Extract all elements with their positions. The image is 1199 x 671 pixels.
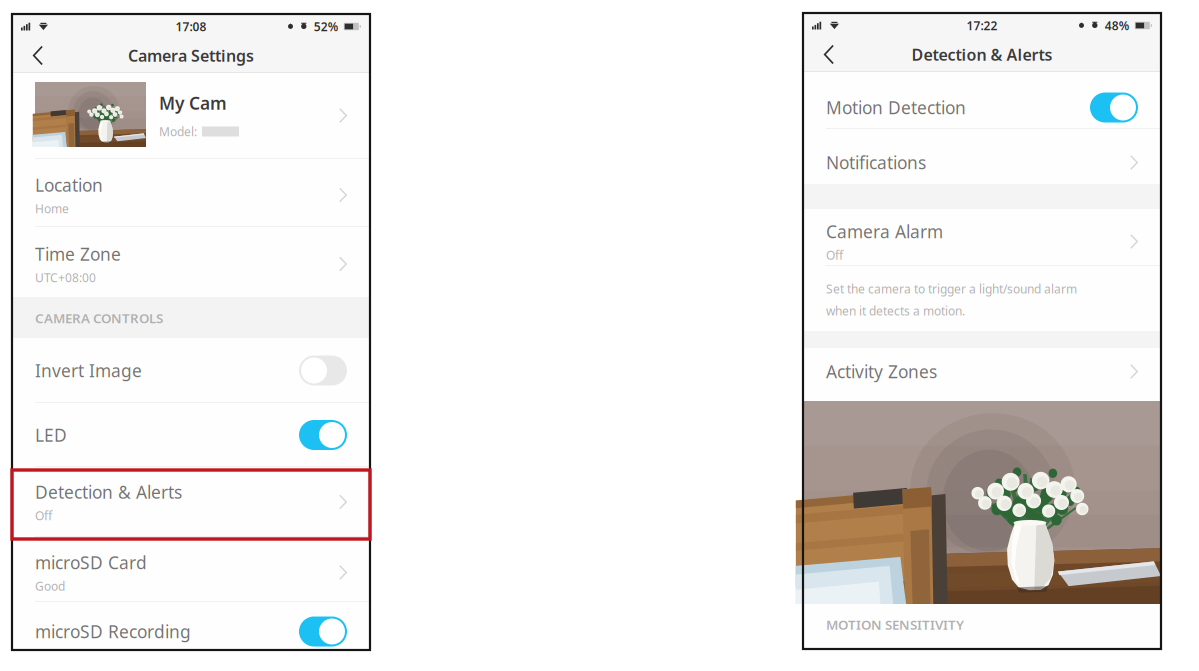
button[interactable]: LED	[12, 403, 370, 467]
staticText: 52%	[314, 18, 339, 34]
staticText: when it detects a motion.	[826, 303, 965, 319]
staticText: Camera Settings	[128, 45, 254, 66]
staticText: microSD Recording	[35, 620, 191, 643]
button[interactable]: Time Zone	[12, 227, 370, 297]
button[interactable]: Notifications	[803, 129, 1161, 184]
staticText: Set the camera to trigger a light/sound …	[826, 281, 1077, 297]
staticText: Invert Image	[35, 359, 142, 382]
staticText: Detection & Alerts	[35, 480, 182, 503]
staticText: UTC+08:00	[35, 269, 96, 285]
staticText: Time Zone	[35, 242, 121, 265]
staticText: Location	[35, 173, 103, 196]
button[interactable]: Motion Detection	[803, 72, 1161, 129]
staticText: Model:	[159, 123, 197, 139]
staticText: 48%	[1105, 17, 1130, 33]
staticText: My Cam	[159, 91, 227, 114]
staticText: Camera Alarm	[826, 220, 943, 243]
button[interactable]: My Cam	[12, 73, 370, 159]
button[interactable]: Back	[803, 38, 855, 71]
staticText: Off	[35, 507, 52, 523]
staticText: Motion Detection	[826, 96, 966, 119]
button[interactable]: Location	[12, 159, 370, 227]
staticText: LED	[35, 423, 67, 446]
staticText: 17:22	[966, 17, 997, 33]
staticText: Home	[35, 200, 69, 216]
staticText: Activity Zones	[826, 360, 937, 383]
staticText: MOTION SENSITIVITY	[826, 616, 964, 633]
button[interactable]: microSD Card	[12, 537, 370, 602]
staticText: Good	[35, 578, 65, 594]
button[interactable]: Invert Image	[12, 338, 370, 403]
staticText: Off	[826, 247, 843, 263]
staticText: Notifications	[826, 151, 926, 174]
staticText: 17:08	[175, 18, 206, 34]
button[interactable]: Detection & Alerts	[12, 467, 370, 537]
staticText: CAMERA CONTROLS	[35, 309, 163, 327]
button[interactable]: microSD Recording	[12, 602, 370, 651]
staticText: microSD Card	[35, 551, 147, 574]
staticText: Detection & Alerts	[911, 44, 1052, 65]
button[interactable]: Back	[12, 39, 64, 72]
button[interactable]: Activity Zones	[803, 348, 1161, 401]
button[interactable]: Camera Alarm	[803, 209, 1161, 266]
